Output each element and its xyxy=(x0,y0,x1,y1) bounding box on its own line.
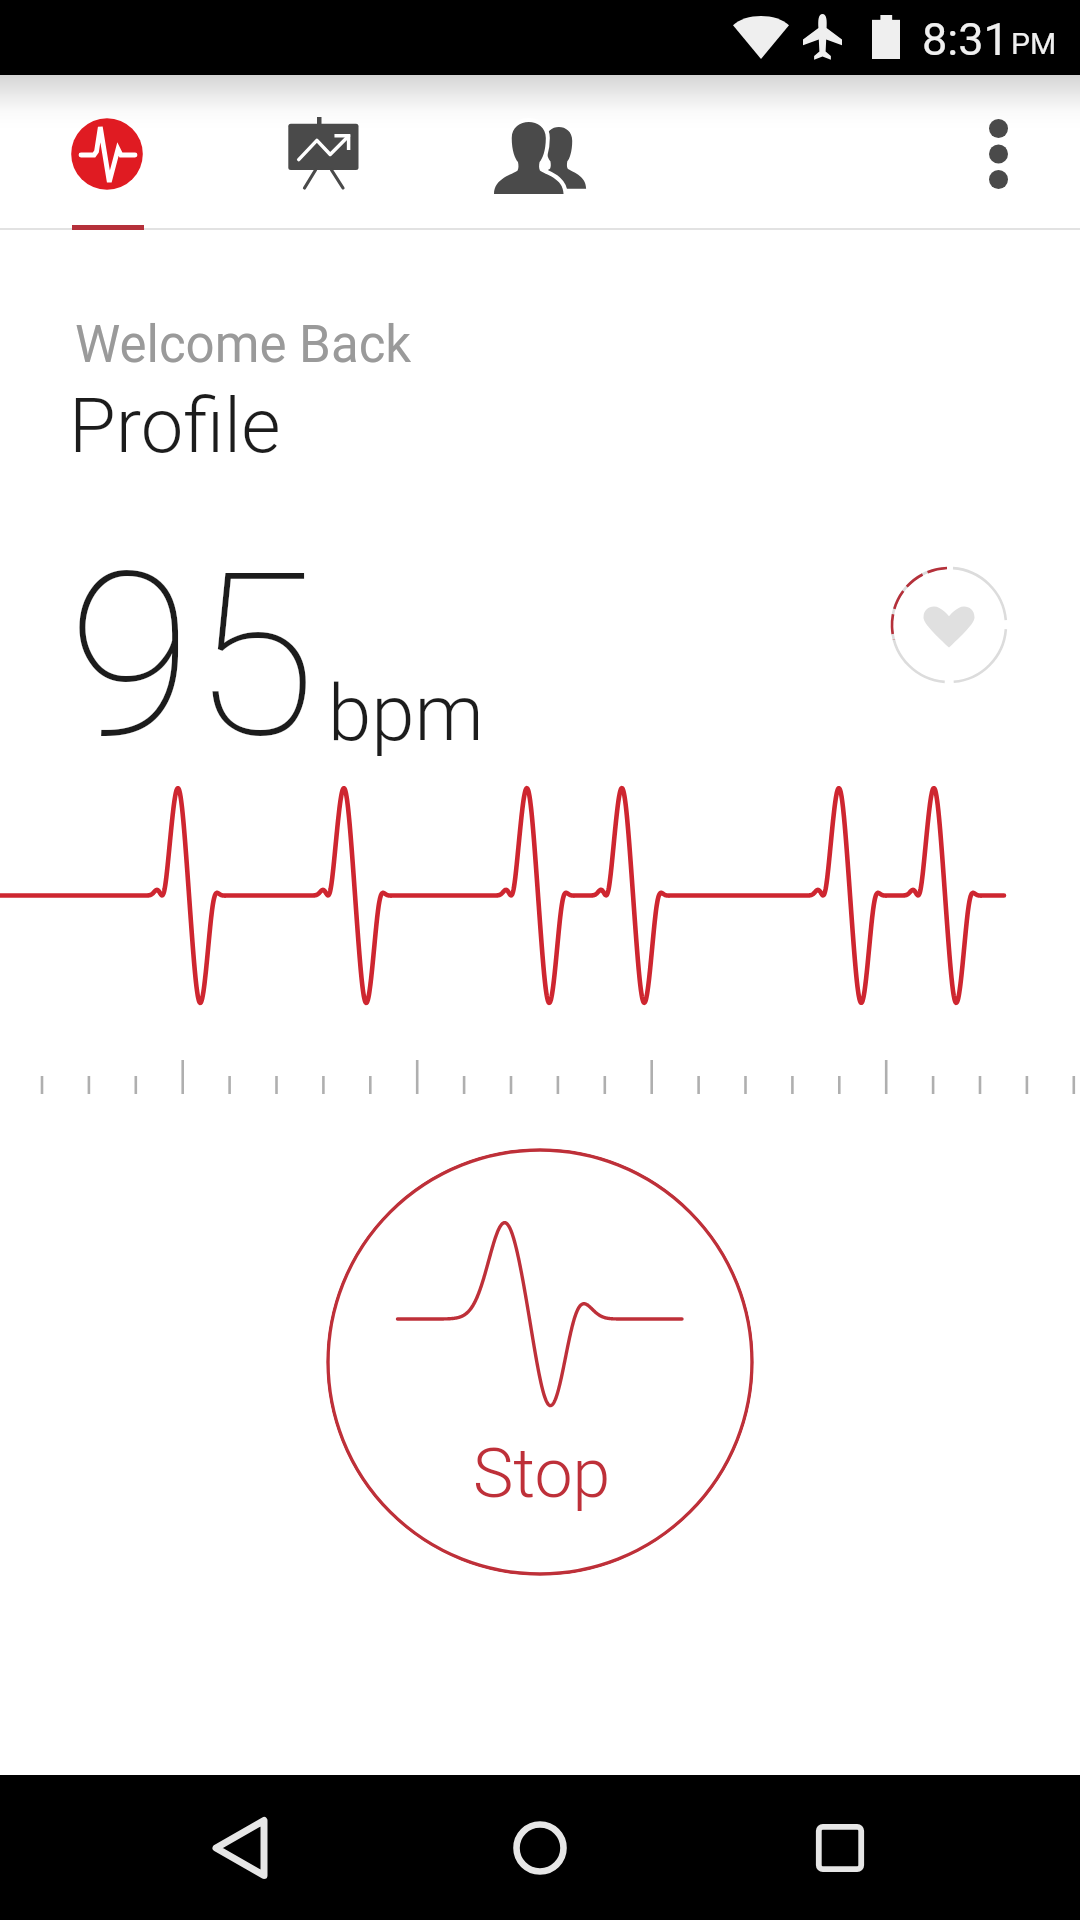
staticText: Welcome Back xyxy=(75,315,412,375)
staticText: bpm xyxy=(328,668,484,759)
staticText: PM xyxy=(1011,26,1057,61)
button[interactable]: More options xyxy=(927,83,1069,225)
button[interactable]: People xyxy=(470,83,612,225)
button[interactable]: Home xyxy=(450,1775,630,1920)
button[interactable]: Heart rate xyxy=(36,83,178,225)
staticText: 8:31 xyxy=(922,13,1009,66)
button[interactable]: Recents xyxy=(750,1775,930,1920)
button[interactable]: Stop xyxy=(326,1148,754,1576)
staticText: 95 xyxy=(68,523,317,789)
staticText: Profile xyxy=(69,381,281,470)
staticText: Stop xyxy=(473,1434,611,1514)
button[interactable]: Statistics xyxy=(252,81,394,223)
button[interactable]: Back xyxy=(150,1775,330,1920)
